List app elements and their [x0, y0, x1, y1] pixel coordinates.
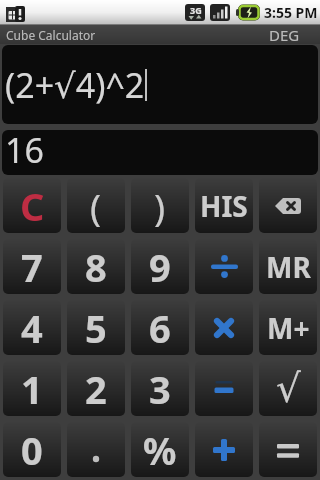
staticText: Cube Calculator: [6, 27, 96, 43]
staticText: 0: [21, 424, 43, 476]
button[interactable]: C: [3, 178, 61, 233]
staticText: 1: [21, 363, 43, 415]
staticText: (2+√4)^2: [5, 62, 145, 108]
staticText: 5: [85, 302, 107, 354]
staticText: %: [143, 425, 177, 475]
staticText: 8: [85, 241, 107, 293]
staticText: HIS: [200, 187, 248, 225]
button[interactable]: 3: [131, 361, 189, 416]
button[interactable]: √: [259, 361, 317, 416]
button[interactable]: [195, 422, 253, 477]
staticText: 3: [149, 363, 171, 415]
staticText: 7: [21, 241, 43, 293]
button[interactable]: 7: [3, 239, 61, 294]
staticText: (: [90, 181, 102, 231]
staticText: √: [276, 366, 301, 411]
staticText: ): [154, 181, 166, 231]
button[interactable]: 4: [3, 300, 61, 355]
button[interactable]: (: [67, 178, 125, 233]
button[interactable]: ): [131, 178, 189, 233]
button[interactable]: [195, 300, 253, 355]
staticText: 2: [85, 363, 107, 415]
button[interactable]: %: [131, 422, 189, 477]
staticText: M+: [267, 309, 310, 347]
button[interactable]: 1: [3, 361, 61, 416]
staticText: 6: [149, 302, 171, 354]
button[interactable]: [259, 422, 317, 477]
button[interactable]: 9: [131, 239, 189, 294]
button[interactable]: 6: [131, 300, 189, 355]
button[interactable]: [195, 239, 253, 294]
button[interactable]: 2: [67, 361, 125, 416]
button[interactable]: MR: [259, 239, 317, 294]
staticText: MR: [266, 248, 311, 286]
staticText: 9: [149, 241, 171, 293]
staticText: DEG: [269, 25, 300, 44]
button[interactable]: 8: [67, 239, 125, 294]
staticText: 3:55 PM: [264, 3, 318, 22]
staticText: 16: [5, 130, 44, 172]
staticText: 3G: [190, 4, 202, 16]
button[interactable]: (2+√4)^2: [2, 45, 318, 124]
button[interactable]: HIS: [195, 178, 253, 233]
button[interactable]: M+: [259, 300, 317, 355]
button[interactable]: 5: [67, 300, 125, 355]
staticText: C: [20, 180, 45, 232]
button[interactable]: [195, 361, 253, 416]
button[interactable]: [259, 178, 317, 233]
button[interactable]: 0: [3, 422, 61, 477]
staticText: 4: [21, 302, 43, 354]
button[interactable]: [67, 422, 125, 477]
